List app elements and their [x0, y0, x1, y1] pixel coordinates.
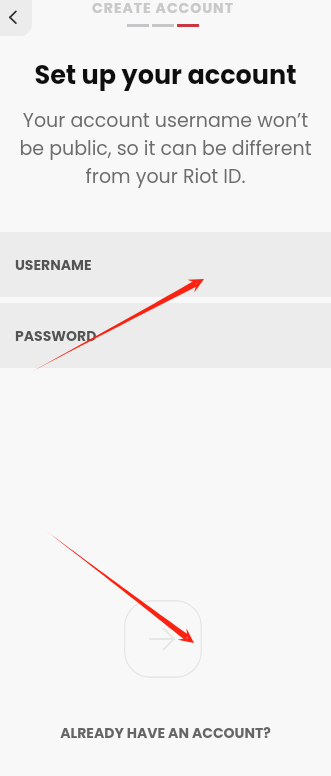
staticText: ALREADY HAVE AN ACCOUNT?	[60, 723, 271, 743]
staticText: PASSWORD	[15, 326, 97, 346]
staticText: Set up your account	[0, 57, 331, 93]
staticText: Your account username won’t be public, s…	[12, 107, 319, 189]
button[interactable]: USERNAME	[0, 232, 331, 297]
button[interactable]: Next	[124, 600, 202, 678]
button[interactable]: PASSWORD	[0, 303, 331, 368]
button[interactable]: ALREADY HAVE AN ACCOUNT?	[0, 723, 331, 743]
button[interactable]: Back	[0, 0, 32, 36]
staticText: CREATE ACCOUNT	[0, 0, 326, 18]
staticText: USERNAME	[15, 255, 92, 275]
